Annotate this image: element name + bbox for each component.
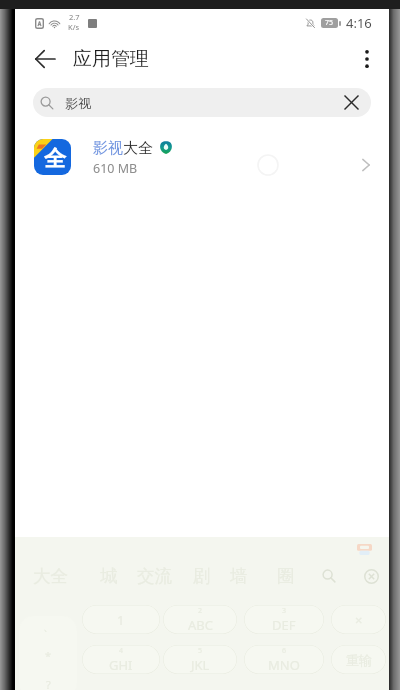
staticText: 2 — [198, 606, 203, 616]
button[interactable]: Clear search — [337, 88, 366, 117]
staticText: ABC — [188, 616, 213, 634]
staticText: 影视 — [65, 95, 91, 111]
button[interactable]: Search — [317, 564, 341, 588]
button[interactable]: 6 — [244, 645, 324, 674]
staticText: K/s — [68, 22, 80, 32]
staticText: ? — [46, 677, 51, 690]
staticText: 圈 — [277, 565, 295, 587]
button[interactable]: 圈 — [276, 564, 295, 588]
button[interactable]: 3 — [244, 605, 324, 634]
button[interactable]: 影视 — [33, 88, 371, 117]
button[interactable]: More options — [347, 39, 387, 79]
staticText: JKL — [191, 656, 210, 674]
button[interactable]: Close keyboard — [359, 564, 383, 588]
staticText: 4 — [119, 646, 124, 656]
button[interactable]: 5 — [163, 645, 237, 674]
staticText: * — [45, 648, 52, 663]
staticText: 6 — [282, 646, 287, 656]
staticText: 1 — [117, 611, 125, 629]
staticText: DEF — [272, 616, 296, 634]
button[interactable]: Back — [24, 38, 65, 79]
staticText: 城 — [100, 565, 118, 587]
staticText: 影视大全 — [93, 139, 153, 158]
button[interactable]: 2 — [163, 605, 237, 634]
staticText: × — [355, 611, 363, 629]
button[interactable]: 4 — [82, 645, 160, 674]
staticText: 剧 — [193, 565, 211, 587]
staticText: 全 — [44, 145, 66, 173]
button[interactable]: 城 — [99, 564, 118, 588]
staticText: 重输 — [346, 652, 372, 668]
staticText: GHI — [109, 656, 133, 674]
button[interactable]: 墙 — [229, 564, 248, 588]
staticText: 大全 — [33, 565, 68, 587]
staticText: 应用管理 — [73, 47, 149, 71]
staticText: 交流 — [137, 565, 172, 587]
staticText: 4:16 — [346, 14, 372, 32]
staticText: 610 MB — [93, 160, 138, 177]
staticText: MNO — [268, 656, 300, 674]
button[interactable]: 大全 — [31, 564, 69, 588]
staticText: 2.7 — [69, 12, 80, 22]
staticText: 墙 — [230, 565, 248, 587]
button[interactable]: 剧 — [192, 564, 211, 588]
button[interactable]: 交流 — [135, 564, 173, 588]
button[interactable]: 重输 — [331, 645, 386, 674]
staticText: 5 — [198, 646, 203, 656]
staticText: 75 — [325, 18, 334, 28]
button[interactable]: 全 — [15, 129, 389, 185]
staticText: 3 — [282, 606, 287, 616]
